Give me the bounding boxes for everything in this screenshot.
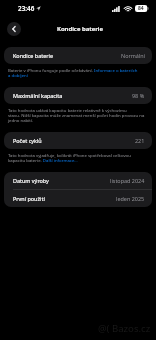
button[interactable]: Počet cyklů <box>4 132 152 149</box>
button[interactable]: Datum výroby <box>4 172 152 189</box>
staticText: Tato hodnota udává kapacitu baterie rela… <box>8 107 145 123</box>
staticText: 23:46 <box>18 4 35 13</box>
staticText: 98 % <box>132 92 145 99</box>
button[interactable]: Kondice baterie <box>4 47 152 64</box>
staticText: Tato hodnota vyjadřuje, kolikrát iPhone … <box>8 152 131 163</box>
staticText: Maximální kapacita <box>13 92 63 99</box>
staticText: Kondice baterie <box>13 52 53 59</box>
button[interactable]: Back <box>7 22 21 36</box>
staticText: Kondice baterie <box>57 25 103 33</box>
staticText: 221 <box>135 137 145 144</box>
button[interactable]: První použití <box>4 190 152 207</box>
staticText: Datum výroby <box>13 177 49 184</box>
staticText: Počet cyklů <box>13 137 42 144</box>
staticText: Baterie v iPhonu funguje podle očekávání… <box>8 67 138 78</box>
staticText: listopad 2024 <box>110 177 145 184</box>
staticText: Normální <box>121 52 145 59</box>
staticText: 84 <box>138 5 144 12</box>
staticText: leden 2025 <box>116 195 145 202</box>
staticText: První použití <box>13 195 45 202</box>
button[interactable]: Maximální kapacita <box>4 87 152 104</box>
staticText: @( Bazos.cz <box>98 322 151 335</box>
